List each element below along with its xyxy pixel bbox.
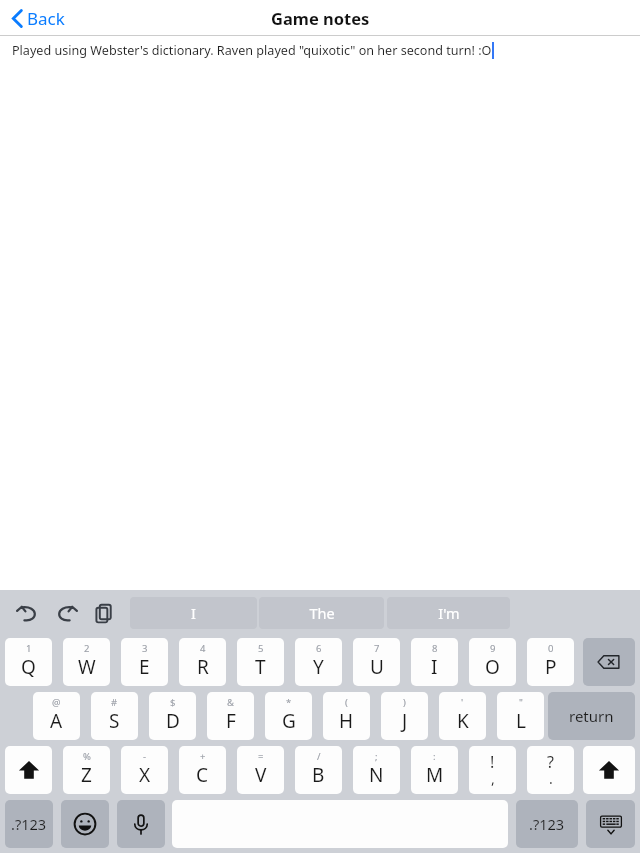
button[interactable]: $ [149,692,196,740]
staticText: O [485,654,500,680]
button[interactable]: The [259,597,384,629]
staticText: J [402,708,408,734]
staticText: R [197,654,209,680]
button[interactable]: ( [323,692,370,740]
staticText: I [191,603,196,623]
button[interactable]: .?123 [516,800,578,848]
staticText: 8 [432,642,438,655]
staticText: Played using Webster's dictionary. Raven… [12,42,492,59]
staticText: A [50,708,63,734]
staticText: 7 [374,642,380,655]
staticText: .?123 [11,814,47,834]
button[interactable]: Emoji [61,800,109,848]
staticText: 6 [316,642,322,655]
staticText: 0 [548,642,554,655]
button[interactable]: - [121,746,168,794]
button[interactable] [548,692,635,740]
staticText: " [519,696,523,709]
staticText: S [109,708,120,734]
staticText: L [516,708,526,734]
staticText: I [431,654,438,680]
staticText: Y [313,654,324,680]
staticText: U [370,654,384,680]
button[interactable]: .?123 [5,800,53,848]
staticText: Back [27,7,65,30]
staticText: W [78,654,96,680]
button[interactable]: & [207,692,254,740]
button[interactable]: Dictation [117,800,165,848]
button[interactable]: " [497,692,544,740]
button[interactable]: Copy [92,600,118,626]
staticText: # [111,696,118,709]
staticText: F [226,708,236,734]
staticText: E [139,654,150,680]
staticText: 3 [142,642,148,655]
button[interactable]: 5 [237,638,284,686]
button[interactable]: Undo [14,600,40,626]
staticText: 4 [200,642,206,655]
staticText: ( [345,696,348,709]
button[interactable]: Shift [5,746,52,794]
staticText: ) [403,696,406,709]
staticText: X [139,762,151,788]
staticText: : [433,750,436,763]
staticText: + [200,750,206,763]
staticText: K [457,708,469,734]
button[interactable]: 4 [179,638,226,686]
button[interactable]: 7 [353,638,400,686]
button[interactable]: 3 [121,638,168,686]
button[interactable]: 8 [411,638,458,686]
staticText: Game notes [271,7,370,29]
staticText: The [309,603,335,623]
button[interactable]: Redo [54,600,80,626]
button[interactable]: I'm [387,597,510,629]
staticText: % [83,750,91,763]
staticText: V [255,762,267,788]
button[interactable]: 1 [5,638,52,686]
staticText: T [255,654,266,680]
staticText: & [227,696,234,709]
staticText: M [426,762,444,788]
button[interactable]: * [265,692,312,740]
staticText: P [545,654,557,680]
staticText: Z [81,762,92,788]
staticText: D [166,708,180,734]
button[interactable]: @ [33,692,80,740]
staticText: N [369,762,384,788]
button[interactable]: I [130,597,257,629]
staticText: ! [490,751,495,773]
staticText: @ [52,696,61,709]
staticText: ; [375,750,378,763]
button[interactable]: Hide keyboard [586,800,635,848]
button[interactable]: ? [527,746,574,794]
button[interactable]: ' [439,692,486,740]
staticText: Q [21,654,36,680]
button[interactable]: % [63,746,110,794]
staticText: H [339,708,354,734]
button[interactable]: Delete [583,638,635,686]
button[interactable]: ! [469,746,516,794]
staticText: - [143,750,147,763]
button[interactable]: 2 [63,638,110,686]
button[interactable]: 0 [527,638,574,686]
staticText: $ [170,696,176,709]
staticText: return [569,706,614,726]
button[interactable]: ; [353,746,400,794]
staticText: ' [461,696,464,709]
button[interactable]: + [179,746,226,794]
button[interactable]: 9 [469,638,516,686]
button[interactable]: ) [381,692,428,740]
staticText: * [286,696,292,709]
staticText: 5 [258,642,264,655]
staticText: B [312,762,325,788]
button[interactable]: # [91,692,138,740]
button[interactable]: = [237,746,284,794]
button[interactable]: Shift [583,746,635,794]
staticText: = [258,750,264,763]
staticText: G [282,708,296,734]
button[interactable]: : [411,746,458,794]
button[interactable]: / [295,746,342,794]
button[interactable]: 6 [295,638,342,686]
button[interactable]: Back [8,3,69,34]
